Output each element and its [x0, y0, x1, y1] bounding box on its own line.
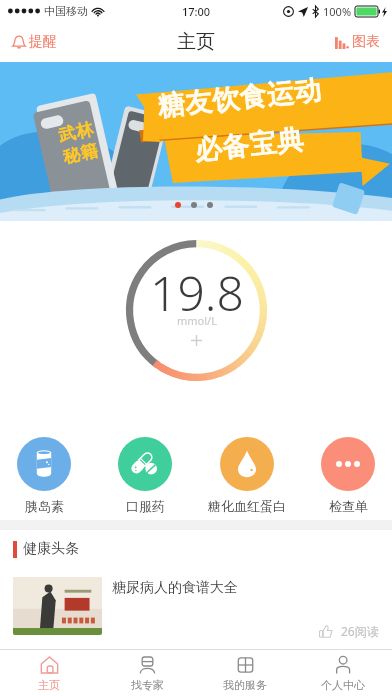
staticText: 主页 [38, 678, 60, 692]
staticText: 糖化血红蛋白 [208, 498, 286, 514]
staticText: 19.8 [150, 260, 244, 325]
staticText: 提醒 [29, 33, 57, 51]
staticText: 100% [323, 4, 352, 19]
staticText: 中国移动 [44, 4, 88, 18]
button[interactable]: 图表 [323, 25, 392, 59]
staticText: 图表 [352, 33, 380, 51]
button[interactable]: Promotion banner [0, 62, 392, 221]
button[interactable]: 我的服务 [196, 650, 294, 696]
staticText: 主页 [177, 30, 215, 54]
staticText: 健康头条 [23, 540, 79, 558]
staticText: 必备宝典 [193, 122, 306, 168]
staticText: 口服药 [126, 498, 165, 514]
button[interactable]: 检查单 [309, 437, 387, 514]
button[interactable]: 口服药 [106, 437, 184, 514]
button[interactable]: 个人中心 [294, 650, 392, 696]
staticText: 胰岛素 [25, 498, 64, 514]
staticText: 检查单 [329, 498, 368, 514]
staticText: 秘籍 [61, 140, 100, 168]
staticText: 我的服务 [223, 678, 267, 692]
button[interactable]: 主页 [0, 650, 98, 696]
staticText: 武林 [56, 118, 96, 146]
button[interactable]: Blood glucose 19.8 mmol/L [126, 240, 267, 381]
button[interactable]: 胰岛素 [5, 437, 83, 514]
staticText: 糖友饮食运动 [156, 73, 324, 124]
staticText: 找专家 [131, 678, 164, 692]
staticText: 26阅读 [341, 623, 379, 639]
button[interactable]: 糖尿病人的食谱大全 [0, 568, 392, 649]
button[interactable]: 找专家 [98, 650, 196, 696]
button[interactable]: 糖化血红蛋白 [208, 437, 286, 514]
staticText: 个人中心 [321, 678, 365, 692]
staticText: 17:00 [182, 4, 211, 19]
staticText: 糖尿病人的食谱大全 [112, 579, 238, 597]
staticText: mmol/L [177, 313, 217, 328]
button[interactable]: 提醒 [0, 25, 69, 59]
